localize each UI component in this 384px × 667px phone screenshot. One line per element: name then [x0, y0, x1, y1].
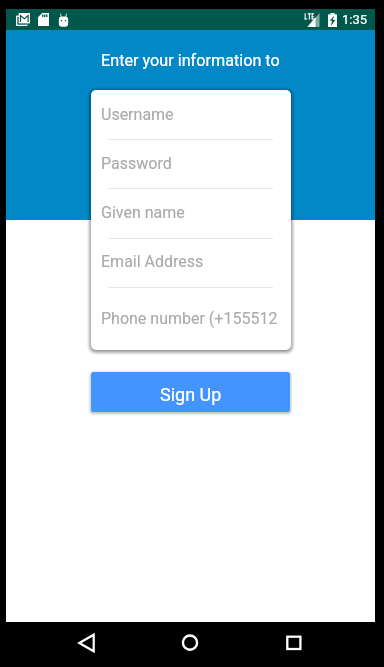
button[interactable]: Password: [91, 146, 291, 195]
button[interactable]: Given name: [91, 195, 291, 244]
button[interactable]: Username: [91, 97, 291, 146]
staticText: Enter your information to: [101, 51, 280, 70]
staticText: Phone number (+155512: [101, 309, 278, 328]
button[interactable]: Sign Up: [91, 372, 290, 412]
staticText: 1:35: [342, 12, 368, 27]
staticText: Username: [101, 105, 174, 124]
staticText: Sign Up: [160, 384, 222, 405]
staticText: Password: [101, 154, 172, 173]
button[interactable]: Email Address: [91, 244, 291, 293]
button[interactable]: Back: [70, 627, 103, 660]
button[interactable]: Home: [174, 627, 207, 660]
button[interactable]: Recent apps: [278, 627, 311, 660]
button[interactable]: Phone number (+155512: [91, 301, 291, 341]
staticText: Given name: [101, 203, 185, 222]
staticText: Email Address: [101, 252, 204, 271]
